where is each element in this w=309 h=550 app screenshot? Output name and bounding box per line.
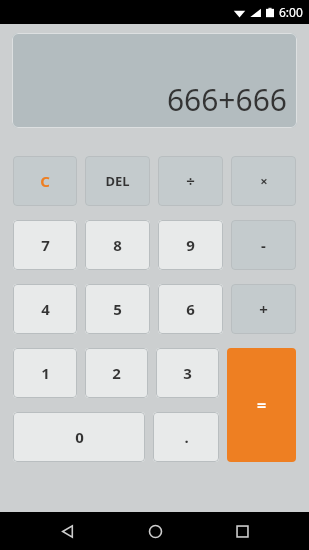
button[interactable]: DEL (85, 156, 150, 206)
staticText: 7 (41, 235, 50, 255)
staticText: 3 (183, 363, 192, 383)
staticText: - (261, 235, 266, 255)
button[interactable]: 8 (85, 220, 150, 270)
staticText: DEL (105, 172, 130, 190)
button[interactable]: × (231, 156, 296, 206)
staticText: 8 (113, 235, 122, 255)
button[interactable]: - (231, 220, 296, 270)
staticText: 666+666 (166, 79, 287, 120)
button[interactable]: 666+666 (12, 33, 297, 128)
button[interactable]: Home (135, 512, 175, 550)
button[interactable]: 4 (13, 284, 77, 334)
staticText: = (257, 394, 267, 416)
staticText: + (259, 299, 268, 319)
staticText: C (40, 171, 50, 191)
button[interactable]: 1 (13, 348, 77, 398)
staticText: 6:00 (279, 4, 303, 20)
button[interactable]: C (13, 156, 77, 206)
button[interactable]: 5 (85, 284, 150, 334)
staticText: 5 (113, 299, 122, 319)
button[interactable]: = (227, 348, 296, 462)
staticText: 9 (186, 235, 195, 255)
staticText: 0 (75, 427, 84, 447)
button[interactable]: Recent apps (222, 512, 262, 550)
staticText: 2 (112, 363, 121, 383)
staticText: 4 (41, 299, 50, 319)
button[interactable]: 9 (158, 220, 223, 270)
button[interactable]: ÷ (158, 156, 223, 206)
staticText: 1 (41, 363, 50, 383)
button[interactable]: Back (47, 512, 87, 550)
button[interactable]: 7 (13, 220, 77, 270)
button[interactable]: 3 (156, 348, 219, 398)
button[interactable]: 0 (13, 412, 145, 462)
button[interactable]: . (153, 412, 219, 462)
staticText: . (184, 427, 189, 447)
staticText: × (260, 172, 268, 190)
button[interactable]: + (231, 284, 296, 334)
staticText: 6 (186, 299, 195, 319)
button[interactable]: 6 (158, 284, 223, 334)
staticText: ÷ (186, 171, 195, 191)
button[interactable]: 2 (85, 348, 148, 398)
